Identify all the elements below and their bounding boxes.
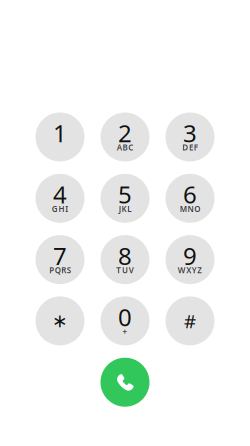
button[interactable]: 8 [100,235,149,284]
staticText: Z [197,265,202,275]
staticText: S [67,265,71,275]
staticText: 0 [118,301,132,333]
staticText: G [52,203,58,214]
staticText: 9 [183,240,197,272]
staticText: N [187,203,193,214]
staticText: 5 [118,178,132,210]
staticText: C [128,142,133,153]
staticText: K [121,203,126,214]
button[interactable]: ∗ [35,296,84,345]
staticText: 6 [183,178,197,210]
button[interactable]: 9 [165,235,214,284]
button[interactable]: 3 [165,112,214,161]
staticText: U [122,265,128,275]
staticText: 4 [53,178,67,210]
staticText: F [194,142,198,153]
staticText: 1 [53,117,67,149]
staticText: W [178,265,186,275]
staticText: 2 [118,117,132,149]
staticText: # [184,308,196,333]
staticText: M [180,203,187,214]
staticText: L [127,203,131,214]
staticText: D [182,142,188,153]
staticText: P [49,265,54,275]
staticText: B [122,142,127,153]
staticText: H [58,203,64,214]
button[interactable]: 6 [165,174,214,223]
button[interactable]: 2 [100,112,149,161]
staticText: R [61,265,66,275]
button[interactable]: 7 [35,235,84,284]
staticText: Q [55,265,61,275]
staticText: E [189,142,193,153]
button[interactable]: 5 [100,174,149,223]
staticText: 3 [183,117,197,149]
staticText: ∗ [52,310,68,331]
staticText: 8 [118,240,132,272]
staticText: J [119,203,121,214]
button[interactable]: # [165,296,214,345]
staticText: Y [192,265,197,275]
button[interactable]: 4 [35,174,84,223]
staticText: + [122,327,127,337]
staticText: V [129,265,134,275]
staticText: 7 [53,240,67,272]
button[interactable]: 1 [35,112,84,161]
button[interactable]: 0 [100,296,149,345]
staticText: I [65,203,68,214]
button[interactable]: Call [100,358,149,407]
staticText: A [117,142,122,153]
staticText: X [186,265,191,275]
staticText: O [194,203,200,214]
staticText: T [116,265,121,275]
